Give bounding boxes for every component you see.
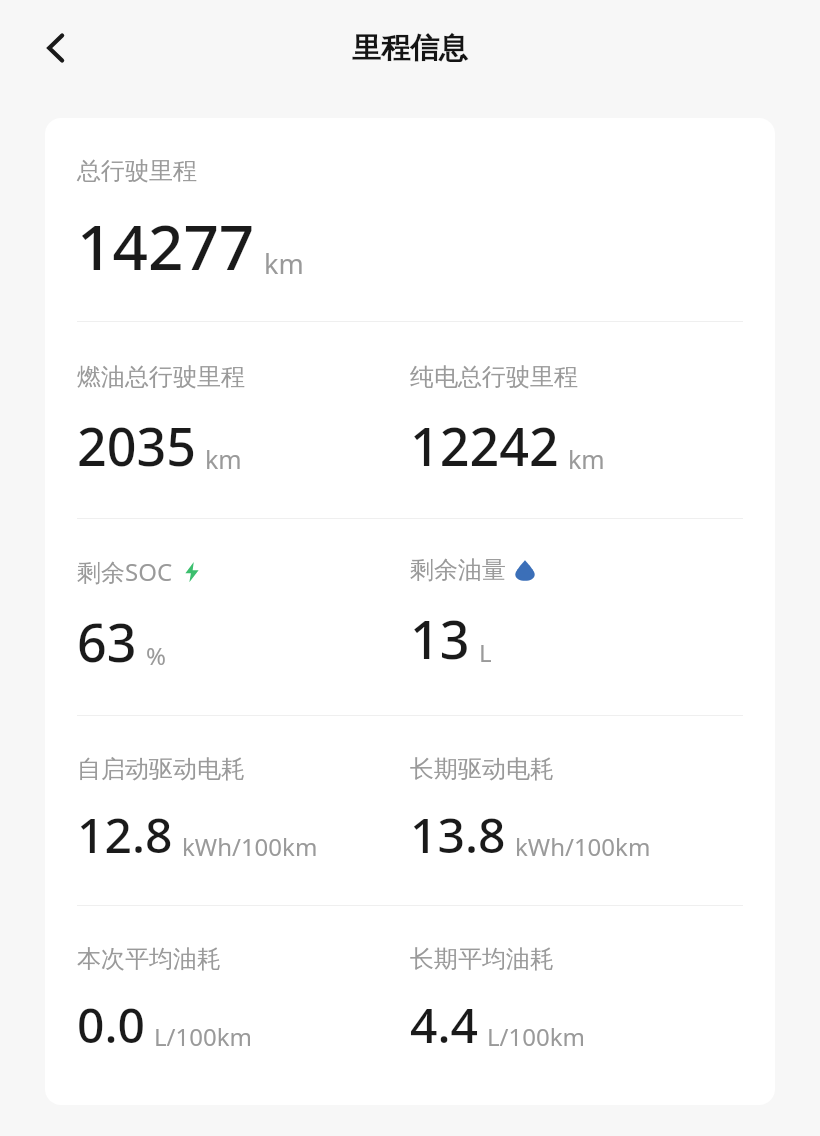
staticText: km xyxy=(568,442,605,476)
staticText: 里程信息 xyxy=(352,30,468,67)
staticText: km xyxy=(264,245,304,282)
staticText: km xyxy=(205,442,242,476)
staticText: 剩余SOC xyxy=(77,555,173,588)
staticText: 63 xyxy=(77,606,137,677)
staticText: 12.8 xyxy=(77,802,173,867)
staticText: 剩余油量 xyxy=(410,555,506,585)
staticText: L/100km xyxy=(154,1020,252,1053)
staticText: 12242 xyxy=(410,410,559,481)
staticText: 自启动驱动电耗 xyxy=(77,754,245,784)
staticText: kWh/100km xyxy=(182,830,318,863)
staticText: 燃油总行驶里程 xyxy=(77,362,245,392)
staticText: 2035 xyxy=(77,410,196,481)
staticText: L xyxy=(479,636,492,669)
staticText: 13 xyxy=(410,603,470,674)
staticText: 0.0 xyxy=(77,992,145,1057)
staticText: 4.4 xyxy=(410,992,478,1057)
staticText: 13.8 xyxy=(410,802,506,867)
staticText: 总行驶里程 xyxy=(77,156,197,186)
button[interactable]: Back xyxy=(26,18,86,78)
staticText: 本次平均油耗 xyxy=(77,944,221,974)
staticText: 长期平均油耗 xyxy=(410,944,554,974)
staticText: % xyxy=(146,639,166,672)
staticText: kWh/100km xyxy=(515,830,651,863)
staticText: L/100km xyxy=(487,1020,585,1053)
staticText: 纯电总行驶里程 xyxy=(410,362,578,392)
staticText: 长期驱动电耗 xyxy=(410,754,554,784)
staticText: 14277 xyxy=(77,204,255,288)
